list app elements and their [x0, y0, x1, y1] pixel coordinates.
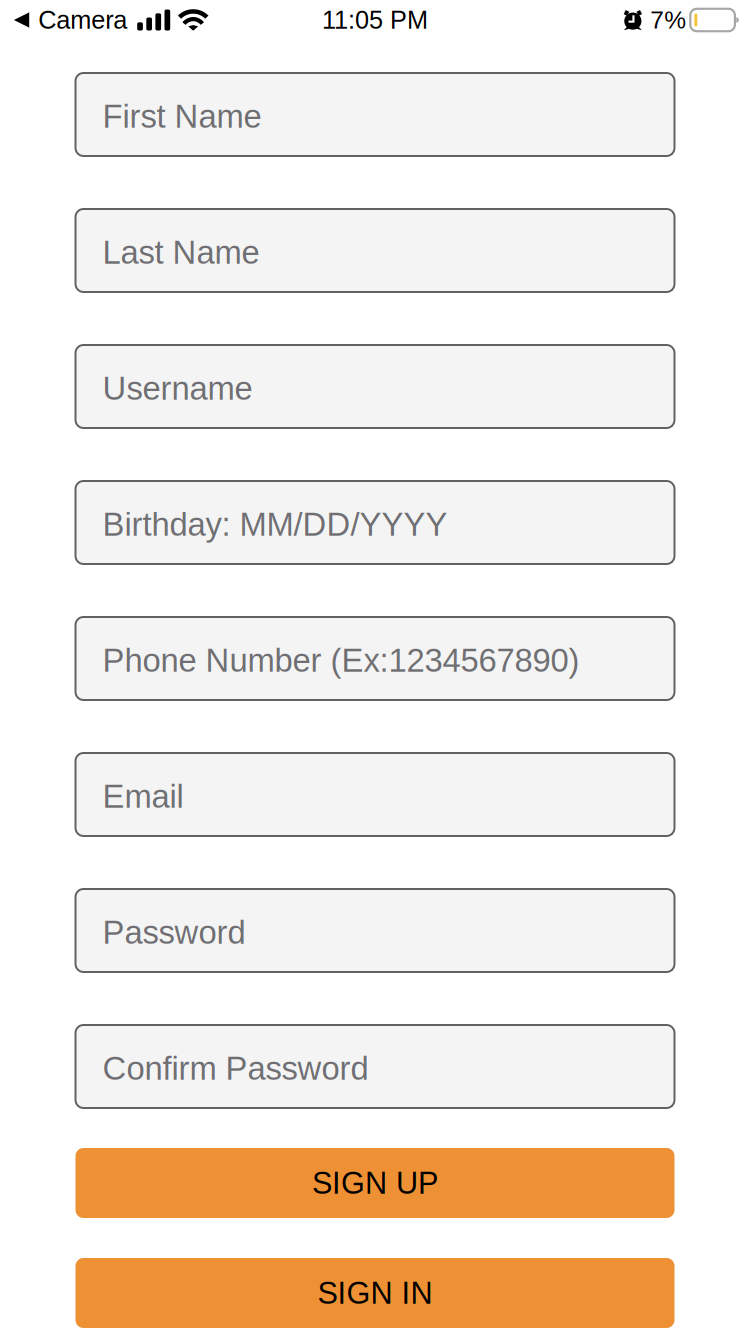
staticText: SIGN IN [317, 1276, 432, 1310]
button[interactable]: Birthday: MM/DD/YYYY [75, 481, 674, 564]
button[interactable]: Last Name [75, 209, 674, 292]
button[interactable]: Back to Camera [14, 6, 127, 34]
staticText: Camera [38, 6, 127, 34]
button[interactable]: First Name [75, 73, 674, 156]
staticText: First Name [102, 98, 261, 135]
button[interactable]: Username [75, 345, 674, 428]
button[interactable]: Confirm Password [75, 1025, 674, 1108]
staticText: Email [102, 778, 183, 815]
staticText: SIGN UP [312, 1166, 438, 1200]
button[interactable]: Password [75, 889, 674, 972]
staticText: Username [102, 370, 252, 407]
staticText: Password [102, 914, 245, 951]
button[interactable]: Phone Number (Ex:1234567890) [75, 617, 674, 700]
staticText: 11:05 PM [322, 6, 428, 34]
staticText: Last Name [102, 234, 259, 271]
button[interactable]: SIGN UP [75, 1148, 674, 1218]
staticText: Birthday: MM/DD/YYYY [102, 506, 447, 543]
staticText: 7% [650, 6, 686, 34]
staticText: Confirm Password [102, 1050, 368, 1087]
button[interactable]: Email [75, 753, 674, 836]
staticText: Phone Number (Ex:1234567890) [102, 642, 579, 679]
button[interactable]: SIGN IN [75, 1258, 674, 1328]
